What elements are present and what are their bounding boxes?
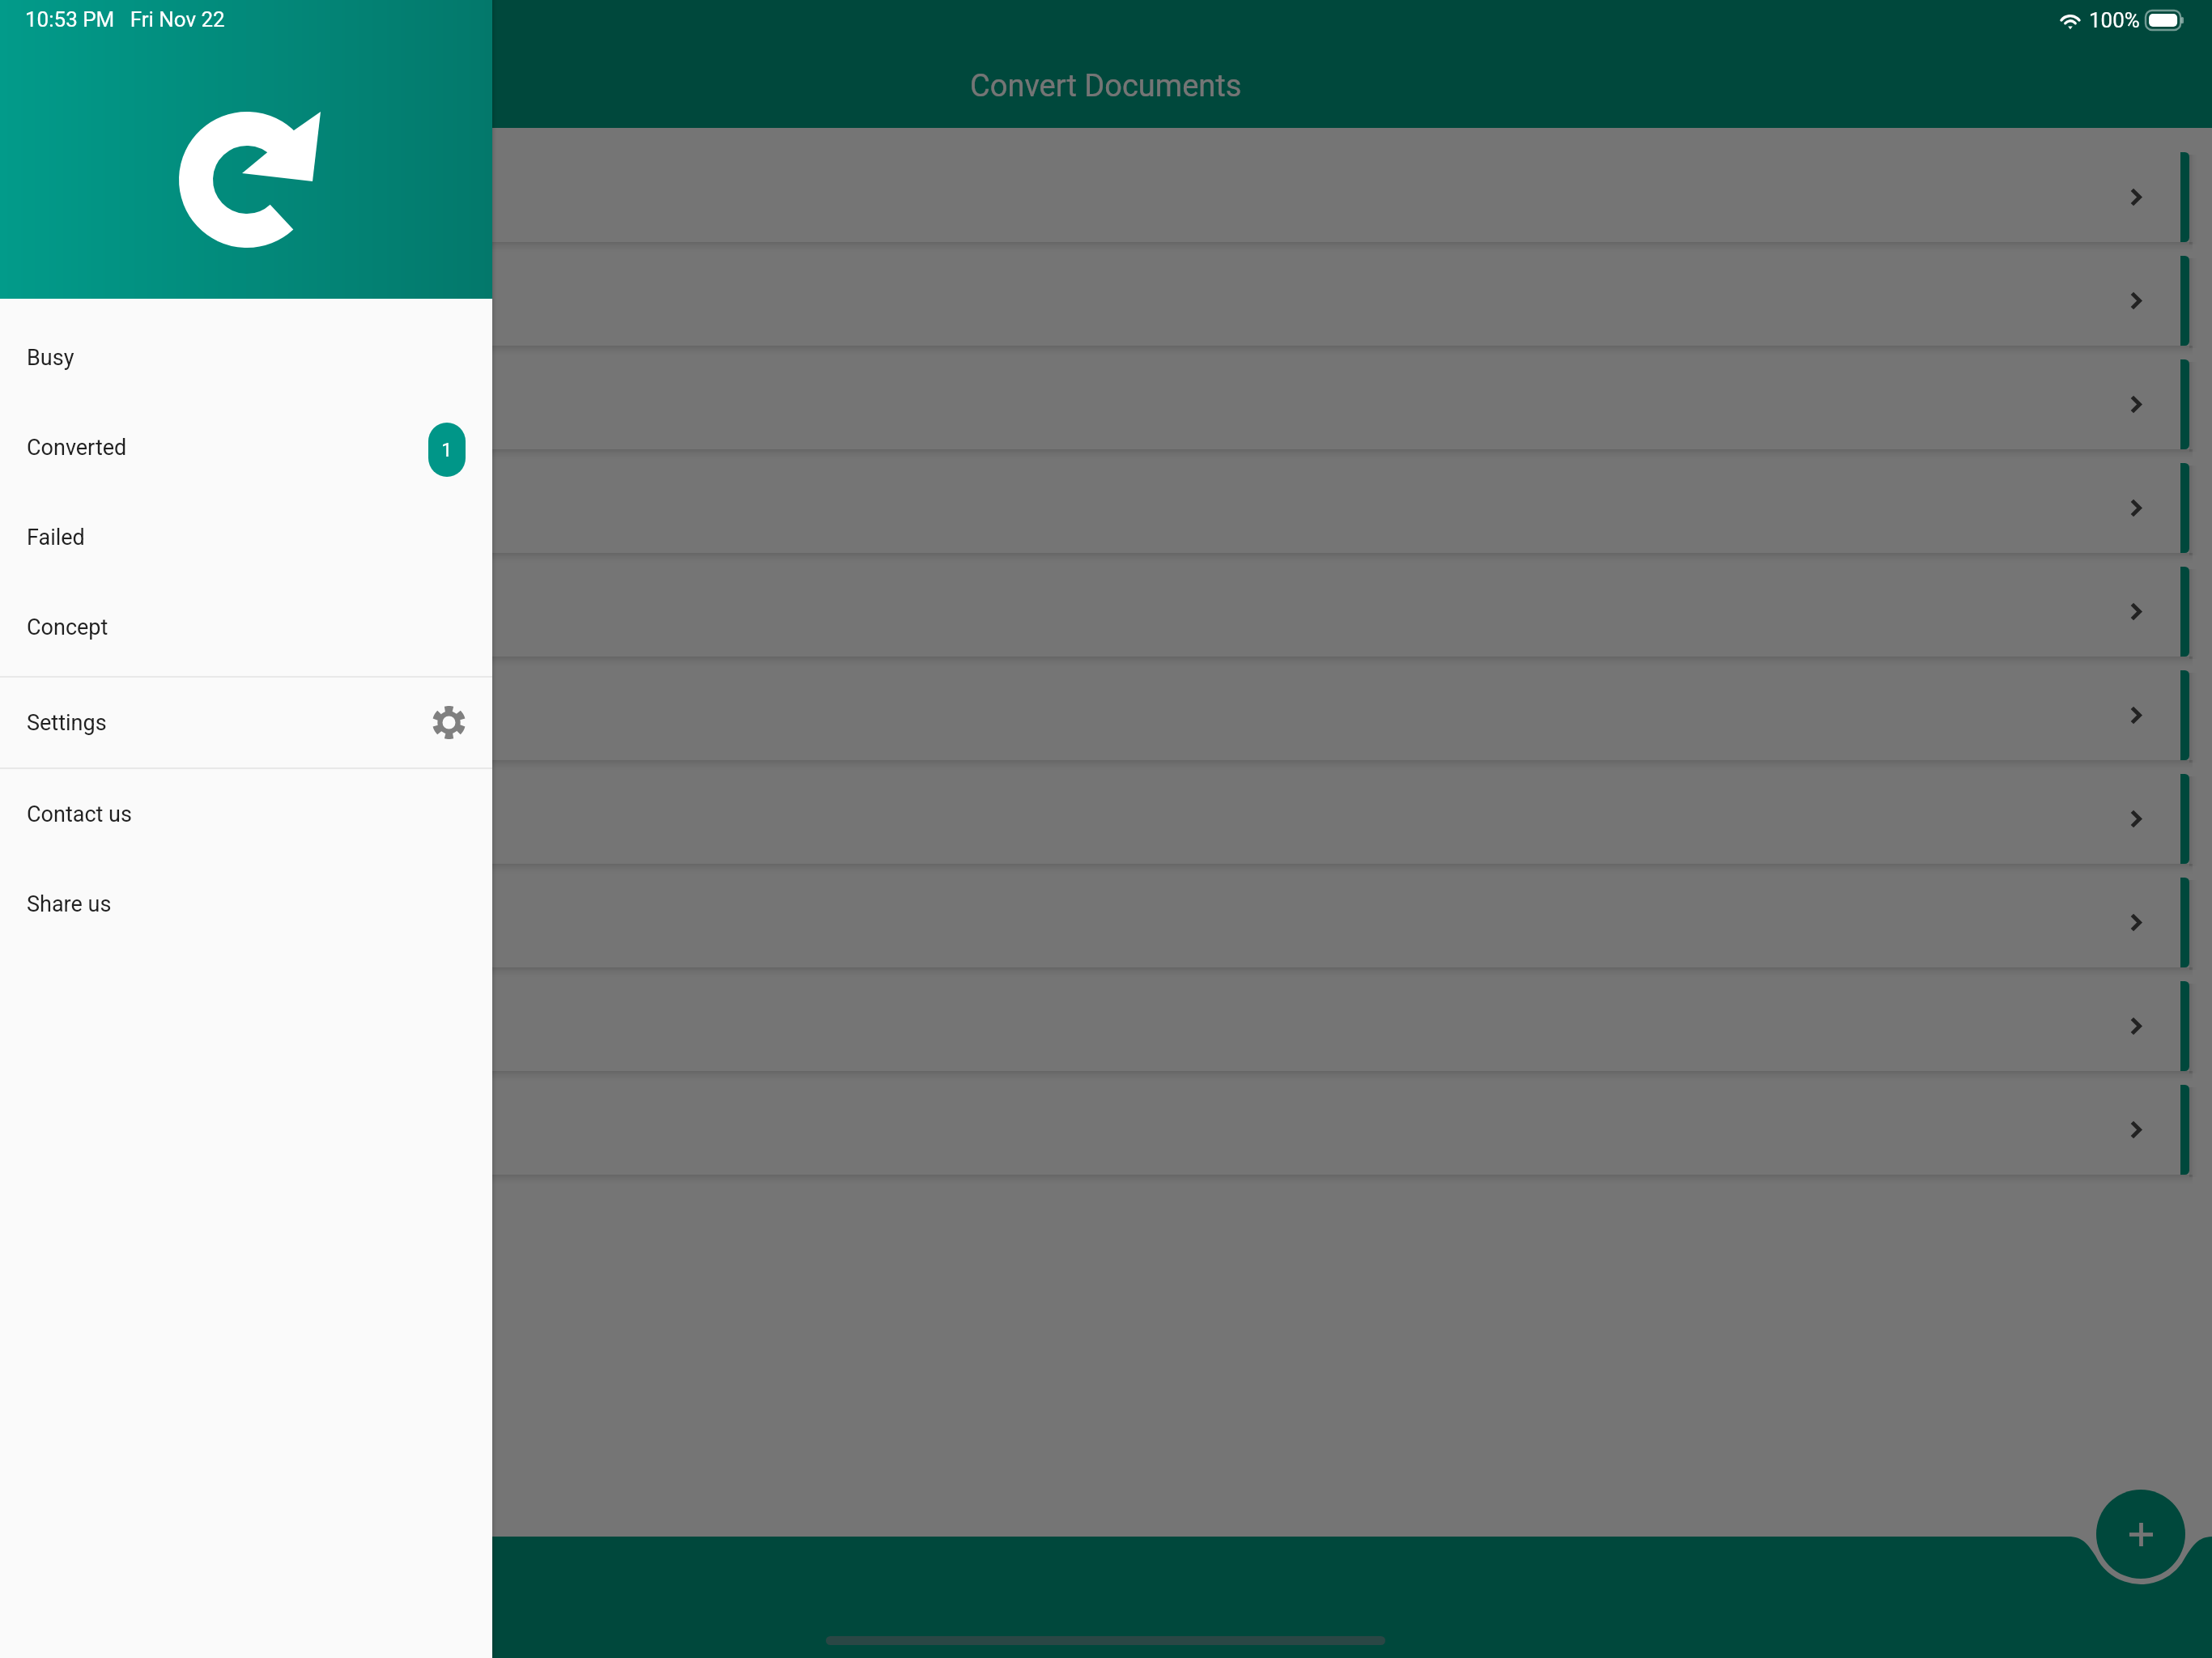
staticText: Convert Documents (970, 68, 1242, 104)
button[interactable]: Settings (0, 678, 492, 767)
button[interactable] (0, 774, 2212, 864)
button[interactable] (0, 359, 2212, 449)
button[interactable] (0, 1085, 2212, 1175)
button[interactable]: Converted (0, 402, 492, 492)
staticText: 1 (441, 439, 453, 461)
button[interactable] (0, 463, 2212, 553)
staticText: Failed (27, 525, 85, 551)
staticText: 10:53 PM Fri Nov 22 (25, 7, 225, 32)
button[interactable] (0, 152, 2212, 242)
button[interactable] (0, 981, 2212, 1071)
staticText: 100% (2089, 8, 2140, 32)
button[interactable]: Contact us (0, 769, 492, 859)
button[interactable]: Concept (0, 582, 492, 672)
button[interactable]: Busy (0, 312, 492, 402)
button[interactable] (0, 567, 2212, 657)
staticText: Converted (27, 435, 127, 461)
button[interactable]: Add document (2096, 1490, 2185, 1579)
button[interactable]: Failed (0, 492, 492, 582)
button[interactable] (0, 878, 2212, 967)
button[interactable] (0, 670, 2212, 760)
button[interactable]: Close navigation drawer (0, 0, 2212, 1658)
staticText: Concept (27, 614, 108, 640)
staticText: Settings (27, 710, 107, 736)
button[interactable] (0, 256, 2212, 346)
staticText: Busy (27, 345, 74, 371)
button[interactable]: Share us (0, 859, 492, 949)
staticText: Share us (27, 891, 112, 917)
staticText: Contact us (27, 801, 132, 827)
